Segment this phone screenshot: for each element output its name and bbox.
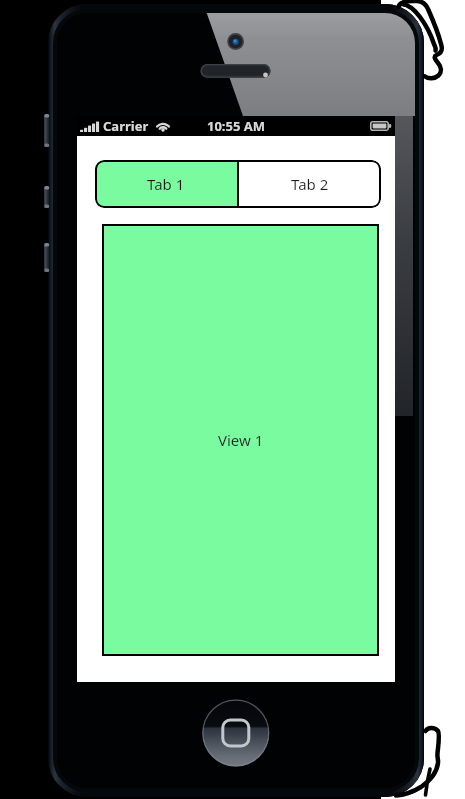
button[interactable]: Tab 2 <box>239 160 381 208</box>
button[interactable]: Tab 1 <box>95 160 237 208</box>
staticText: Tab 2 <box>291 174 329 194</box>
staticText: Carrier <box>103 117 149 135</box>
staticText: View 1 <box>218 430 264 450</box>
staticText: 10:55 AM <box>207 117 266 135</box>
staticText: Tab 1 <box>147 174 185 194</box>
